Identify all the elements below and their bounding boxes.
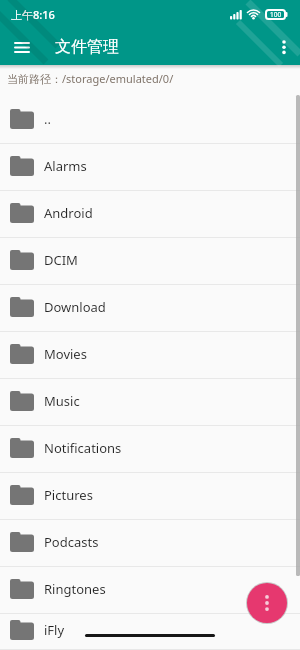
staticText: Podcasts [44,533,99,551]
staticText: 当前路径：/storage/emulated/0/ [7,71,174,86]
staticText: Pictures [44,486,93,504]
staticText: .. [44,110,51,128]
button[interactable]: Notifications [0,426,300,473]
staticText: Music [44,392,80,410]
button[interactable]: Alarms [0,144,300,191]
button[interactable]: DCIM [0,238,300,285]
button[interactable]: Music [0,379,300,426]
staticText: Movies [44,345,87,363]
staticText: iFly [44,621,65,639]
button[interactable]: Pictures [0,473,300,520]
button[interactable] [6,31,38,63]
staticText: Notifications [44,439,122,457]
staticText: 100 [270,10,282,19]
button[interactable]: Android [0,191,300,238]
staticText: DCIM [44,251,78,269]
button[interactable]: Ringtones [0,567,300,614]
button[interactable]: iFly [0,614,300,650]
staticText: Alarms [44,157,87,175]
button[interactable] [270,33,298,61]
button[interactable] [247,583,287,623]
staticText: 上午8:16 [11,7,55,22]
staticText: Download [44,298,106,316]
button[interactable]: Movies [0,332,300,379]
staticText: Android [44,204,93,222]
button[interactable]: Podcasts [0,520,300,567]
button[interactable]: Download [0,285,300,332]
button[interactable]: .. [0,97,300,144]
staticText: Ringtones [44,580,106,598]
staticText: 文件管理 [55,37,119,57]
